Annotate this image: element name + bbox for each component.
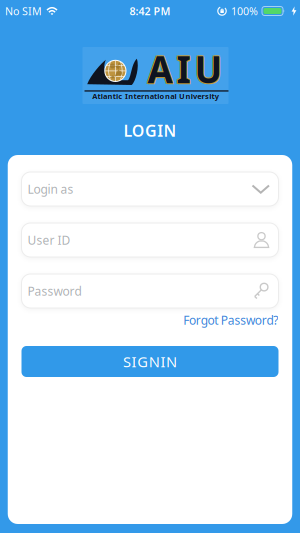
staticText: 8:42 PM: [129, 4, 170, 18]
button[interactable]: SIGNIN: [21, 346, 278, 377]
staticText: AIU: [148, 45, 223, 95]
staticText: Forgot Password?: [183, 312, 278, 328]
staticText: AIU: [148, 43, 223, 93]
button[interactable]: Login as: [21, 172, 278, 206]
staticText: Login as: [27, 181, 73, 197]
staticText: LOGIN: [123, 120, 177, 141]
staticText: AIU: [147, 45, 222, 95]
staticText: User ID: [27, 232, 70, 248]
button[interactable]: Password: [21, 274, 278, 308]
staticText: No SIM: [5, 4, 42, 18]
staticText: SIGNIN: [123, 352, 177, 371]
staticText: Password: [27, 283, 81, 299]
button[interactable]: User ID: [21, 223, 278, 257]
staticText: 100%: [231, 4, 258, 18]
button[interactable]: Forgot Password?: [183, 312, 278, 328]
staticText: Atlantic International University: [92, 91, 219, 101]
staticText: AIU: [147, 43, 222, 93]
staticText: AIU: [147, 44, 222, 94]
